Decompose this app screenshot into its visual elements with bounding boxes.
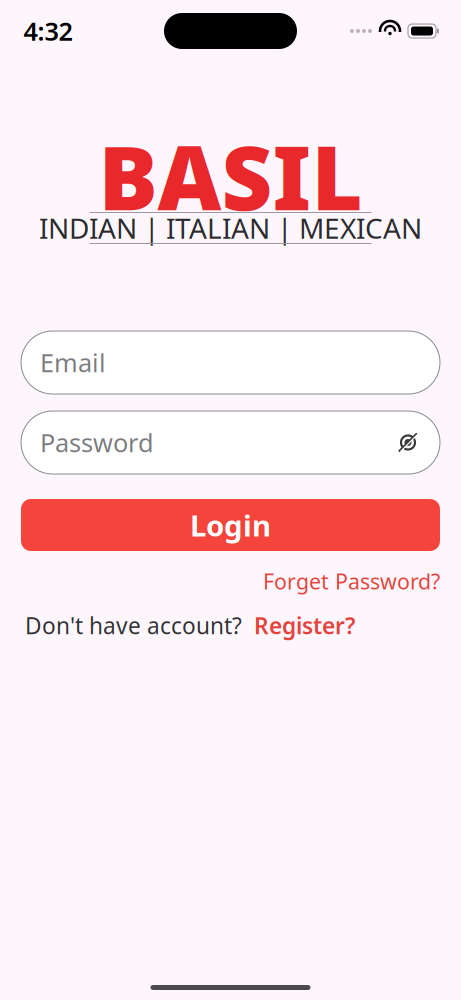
button[interactable]: Forget Password? — [263, 567, 440, 595]
button[interactable]: Show password — [388, 422, 428, 462]
button[interactable]: Login — [21, 499, 440, 551]
staticText: Register? — [254, 610, 355, 640]
staticText: Password — [40, 426, 154, 459]
staticText: 4:32 — [23, 14, 72, 48]
staticText: Don't have account? — [25, 610, 242, 640]
staticText: Email — [40, 346, 106, 379]
staticText: INDIAN | ITALIAN | MEXICAN — [39, 209, 422, 247]
staticText: BASIL — [98, 118, 362, 234]
staticText: Login — [190, 505, 271, 544]
button[interactable]: Register? — [254, 610, 355, 640]
staticText: Forget Password? — [263, 567, 440, 595]
